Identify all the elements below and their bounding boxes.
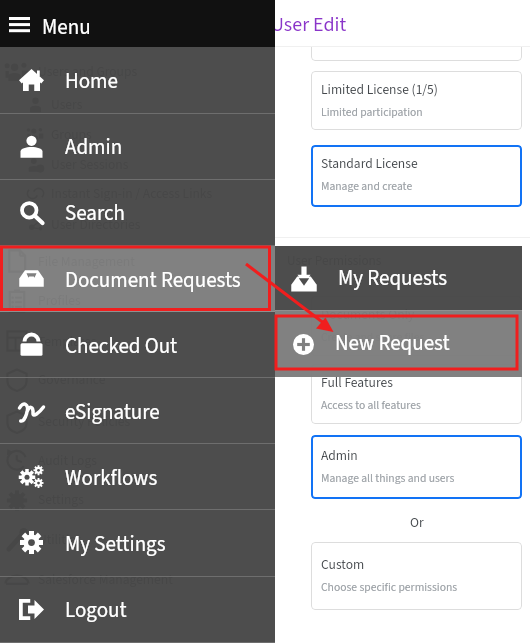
staticText: My Settings xyxy=(65,529,166,559)
staticText: Users and Groups xyxy=(38,62,138,81)
button[interactable] xyxy=(0,47,275,113)
button[interactable] xyxy=(311,542,522,610)
button[interactable] xyxy=(0,378,275,444)
button[interactable] xyxy=(311,145,522,207)
staticText: Salesforce Management xyxy=(38,570,173,589)
button[interactable] xyxy=(0,444,275,510)
staticText: Admin xyxy=(321,446,358,465)
button[interactable] xyxy=(311,8,522,61)
staticText: User Edit xyxy=(271,11,347,39)
button[interactable] xyxy=(0,179,275,245)
button[interactable] xyxy=(0,245,275,311)
button[interactable] xyxy=(0,510,275,576)
staticText: Manage all things and users xyxy=(321,470,455,487)
staticText: Standard License xyxy=(321,154,418,173)
staticText: Templates xyxy=(38,332,97,351)
staticText: Menu xyxy=(42,12,91,42)
staticText: Custom xyxy=(321,555,365,574)
staticText: Governance xyxy=(38,370,106,389)
button[interactable] xyxy=(0,113,275,179)
staticText: Logout xyxy=(65,595,127,625)
staticText: Home xyxy=(65,66,118,96)
staticText: Security Policies xyxy=(38,412,131,431)
staticText: Profiles xyxy=(38,291,81,310)
staticText: Workflows xyxy=(65,463,158,493)
staticText: Audit Logs xyxy=(38,451,97,470)
staticText: Users xyxy=(51,95,83,114)
staticText: Utilities xyxy=(38,530,82,549)
button[interactable]: Open navigation menu xyxy=(9,17,30,32)
staticText: Documents Only xyxy=(321,305,415,324)
staticText: Manage and create xyxy=(321,178,413,195)
staticText: Limited participation xyxy=(321,104,423,121)
staticText: My Requests xyxy=(338,263,447,293)
button[interactable] xyxy=(0,312,275,378)
staticText: User Directories xyxy=(51,215,141,234)
button[interactable]: New Request xyxy=(275,311,522,377)
staticText: Checked Out xyxy=(65,331,178,361)
button[interactable] xyxy=(311,296,522,356)
staticText: eSignature xyxy=(65,397,160,427)
staticText: Search xyxy=(65,198,126,228)
staticText: Access to all features xyxy=(321,397,421,414)
staticText: Limited License (1/5) xyxy=(321,80,438,99)
button[interactable]: My Requests xyxy=(275,246,522,311)
staticText: Or xyxy=(410,513,424,532)
staticText: Groups xyxy=(51,125,92,144)
staticText: Admin xyxy=(65,132,123,162)
button[interactable] xyxy=(0,576,275,642)
staticText: Full Features xyxy=(321,373,393,392)
button[interactable] xyxy=(311,71,522,130)
button[interactable] xyxy=(311,364,522,424)
staticText: Choose specific permissions xyxy=(321,579,458,596)
staticText: New Request xyxy=(335,328,450,358)
staticText: Document Requests xyxy=(65,265,241,295)
staticText: User Permissions xyxy=(287,251,382,270)
button[interactable] xyxy=(311,435,522,499)
staticText: Create and share files xyxy=(321,329,425,346)
